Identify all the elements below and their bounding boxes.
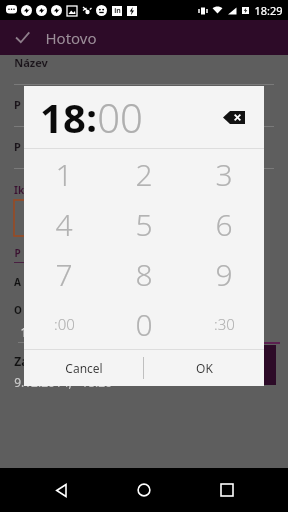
button[interactable]: 3	[184, 149, 264, 199]
button[interactable]: Back	[39, 468, 83, 512]
button[interactable]: 7	[24, 249, 104, 299]
button[interactable]: 1	[24, 149, 104, 199]
staticText: 9	[215, 254, 233, 295]
staticText: :30	[214, 314, 235, 334]
button[interactable]: Home	[122, 468, 166, 512]
button[interactable]: 6	[184, 199, 264, 249]
staticText: 0	[135, 304, 153, 345]
staticText: P	[14, 139, 21, 154]
staticText: 2	[135, 154, 153, 195]
button[interactable]: 5	[104, 199, 184, 249]
staticText: 00	[97, 90, 143, 144]
button[interactable]: :00	[24, 299, 104, 349]
staticText: 18:29	[254, 3, 283, 18]
button[interactable]: Hotovo	[0, 20, 288, 55]
staticText: 7	[55, 254, 73, 295]
button[interactable]: Backspace	[214, 97, 254, 137]
button[interactable]: Cancel	[24, 350, 143, 386]
staticText: 3	[215, 154, 233, 195]
button[interactable]: Recents	[205, 468, 249, 512]
staticText: :00	[54, 314, 75, 334]
staticText: 18	[40, 90, 86, 144]
button[interactable]: 4	[24, 199, 104, 249]
staticText: P	[14, 97, 21, 112]
staticText: in	[114, 6, 121, 16]
button[interactable]: :30	[184, 299, 264, 349]
staticText: 12 hodin	[20, 323, 74, 341]
staticText: A	[14, 275, 21, 289]
button[interactable]: 2	[104, 149, 184, 199]
staticText: 6	[215, 204, 233, 245]
staticText: 5	[135, 204, 153, 245]
button[interactable]: 9	[184, 249, 264, 299]
staticText: Začátek	[14, 353, 62, 369]
staticText: 4	[55, 204, 73, 245]
button[interactable]: 0	[104, 299, 184, 349]
staticText: P	[14, 246, 21, 260]
button[interactable]: OK	[144, 350, 264, 386]
staticText: Název	[14, 55, 48, 70]
staticText: :	[86, 91, 97, 143]
staticText: Ikona	[14, 183, 43, 197]
staticText: 9.12.2014, 18:26	[14, 374, 112, 390]
staticText: 1	[55, 154, 73, 195]
staticText: OK	[196, 360, 213, 376]
button[interactable]: 8	[104, 249, 184, 299]
staticText: Cancel	[65, 360, 103, 376]
staticText: Hotovo	[45, 28, 97, 48]
staticText: 8	[135, 254, 153, 295]
staticText: O	[14, 303, 22, 317]
